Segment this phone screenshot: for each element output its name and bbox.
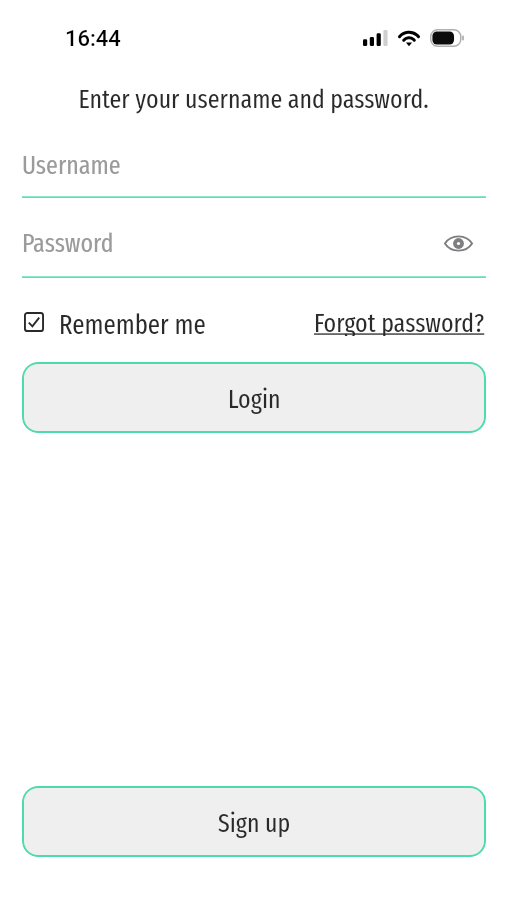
button[interactable]: Remember me — [24, 309, 206, 335]
staticText: Remember me — [59, 309, 206, 335]
staticText: Enter your username and password. — [0, 84, 507, 115]
staticText: Forgot password? — [314, 308, 485, 336]
button[interactable]: Login — [22, 362, 486, 433]
button[interactable]: Sign up — [22, 786, 486, 857]
staticText: Password — [22, 228, 114, 259]
staticText: Login — [228, 384, 281, 415]
staticText: Username — [22, 150, 121, 181]
staticText: 16:44 — [65, 26, 121, 52]
button[interactable]: Show password — [438, 223, 478, 263]
staticText: Sign up — [218, 808, 291, 839]
button[interactable]: Forgot password? — [314, 308, 485, 336]
